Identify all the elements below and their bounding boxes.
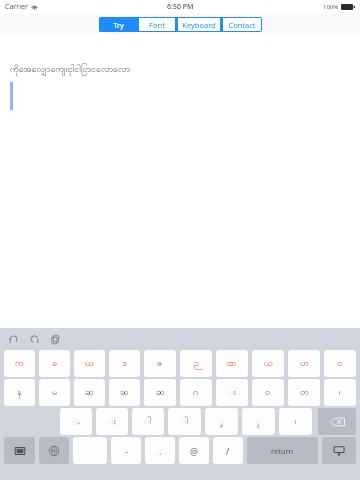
staticText: က [15,357,24,370]
button[interactable]: ဉ [180,350,212,377]
staticText: return [271,446,294,456]
button[interactable]: ဆ [109,379,140,406]
staticText: ၞ [219,415,225,428]
staticText: Try [113,20,124,30]
button[interactable]: က [4,350,35,377]
staticText: ဃ [85,357,94,370]
staticText: ႇ [72,415,80,428]
staticText: ကိုအေလျှောကျေးငှါငါငြာငလောလော [10,63,131,76]
staticText: တ [300,386,309,399]
button[interactable]: Copy [50,334,61,345]
staticText: ဒ [122,357,127,370]
button[interactable]: ဆ [144,379,176,406]
staticText: ဟ [300,357,309,370]
button[interactable]: Space [73,437,107,464]
button[interactable]: ၊ [279,408,312,435]
staticText: 6:50 PM [167,2,194,12]
staticText: Carrier [5,2,28,12]
button[interactable]: တ [288,379,320,406]
button[interactable]: - [111,437,141,464]
button[interactable]: ယ [252,350,284,377]
button[interactable]: ဇ [144,350,176,377]
button[interactable]: . [145,437,175,464]
staticText: ဆ [156,386,165,399]
button[interactable]: မ [39,379,70,406]
button[interactable]: Font [138,17,176,32]
staticText: ၟ [256,415,262,428]
button[interactable]: ၞ [205,408,238,435]
button[interactable]: ဃ [74,350,105,377]
button[interactable]: ဏ [216,350,248,377]
staticText: @ [190,445,199,457]
staticText: ဇ [157,357,163,370]
staticText: ဏ [227,357,237,370]
button[interactable]: Contact [222,17,262,32]
button[interactable]: return [247,437,318,464]
staticText: ဝ [265,386,271,399]
button[interactable]: Delete [318,408,356,435]
staticText: 100% [323,3,339,11]
button[interactable]: န [4,379,35,406]
button[interactable]: ဂ [180,379,212,406]
button[interactable]: ခ [39,350,70,377]
staticText: - [125,445,128,457]
button[interactable]: း [216,379,248,406]
button[interactable]: ဝ [324,350,356,377]
button[interactable]: ၊ [324,379,356,406]
button[interactable]: ႇ [60,408,92,435]
staticText: ဆ [85,386,94,399]
staticText: Font [149,20,165,30]
button[interactable]: / [213,437,243,464]
button[interactable]: ႈ [96,408,128,435]
staticText: ဉ [194,357,199,370]
staticText: ႈ [108,415,116,428]
button[interactable]: Hide keyboard [322,437,356,464]
staticText: န [17,386,22,399]
button[interactable]: Try [99,17,137,32]
button[interactable]: Keyboard [177,17,221,32]
button[interactable]: ဝ [252,379,284,406]
button[interactable]: ဟ [288,350,320,377]
staticText: မ [52,386,58,399]
staticText: Contact [228,20,256,30]
staticText: / [226,445,230,457]
staticText: ါ [181,415,189,428]
staticText: ဂ [193,386,199,399]
staticText: ၊ [339,386,341,399]
button[interactable]: Switch keyboard [4,437,35,464]
staticText: ယ [264,357,273,370]
button[interactable]: ၟ [242,408,275,435]
button[interactable]: Redo [29,334,40,345]
button[interactable]: @ [179,437,209,464]
button[interactable]: ါ [132,408,164,435]
button[interactable]: Undo [8,334,19,345]
button[interactable]: Globe [39,437,69,464]
staticText: ၊ [295,415,297,428]
staticText: . [159,445,162,457]
staticText: း [228,386,236,399]
staticText: Keyboard [182,20,216,30]
button[interactable]: ဆ [74,379,105,406]
button[interactable]: ဒ [109,350,140,377]
button[interactable]: ါ [168,408,201,435]
staticText: ခ [52,357,58,370]
staticText: ဆ [120,386,129,399]
staticText: ဝ [337,357,343,370]
staticText: ါ [144,415,152,428]
